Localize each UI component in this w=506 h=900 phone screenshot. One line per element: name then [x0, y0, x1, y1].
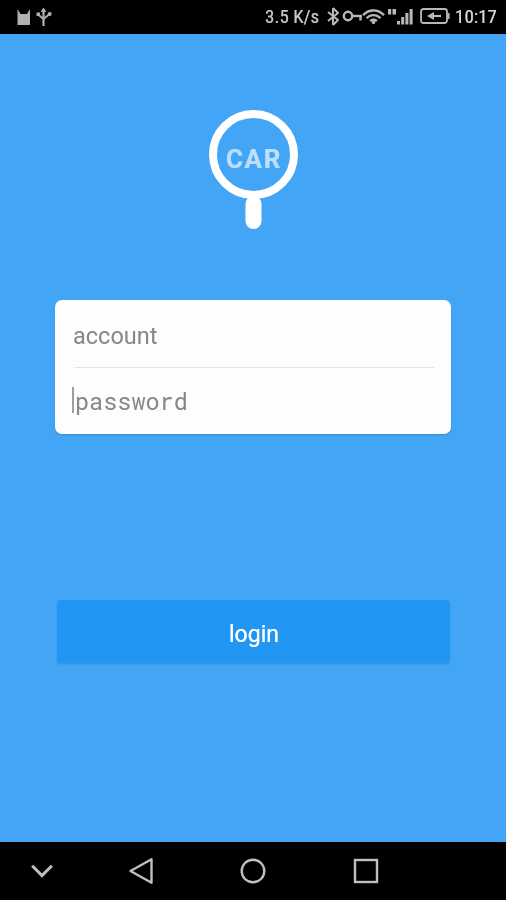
- button[interactable]: Recent apps: [337, 842, 395, 900]
- staticText: 3.5 K/s: [265, 5, 320, 27]
- button[interactable]: account: [55, 300, 451, 367]
- staticText: account: [73, 322, 158, 350]
- button[interactable]: Back: [112, 842, 170, 900]
- button[interactable]: password: [55, 368, 451, 434]
- staticText: login: [229, 621, 279, 648]
- button[interactable]: login: [57, 600, 450, 663]
- staticText: 10:17: [455, 5, 497, 27]
- button[interactable]: Hide keyboard: [13, 842, 71, 900]
- staticText: password: [75, 385, 188, 416]
- staticText: CAR: [226, 144, 282, 174]
- button[interactable]: Home: [224, 842, 282, 900]
